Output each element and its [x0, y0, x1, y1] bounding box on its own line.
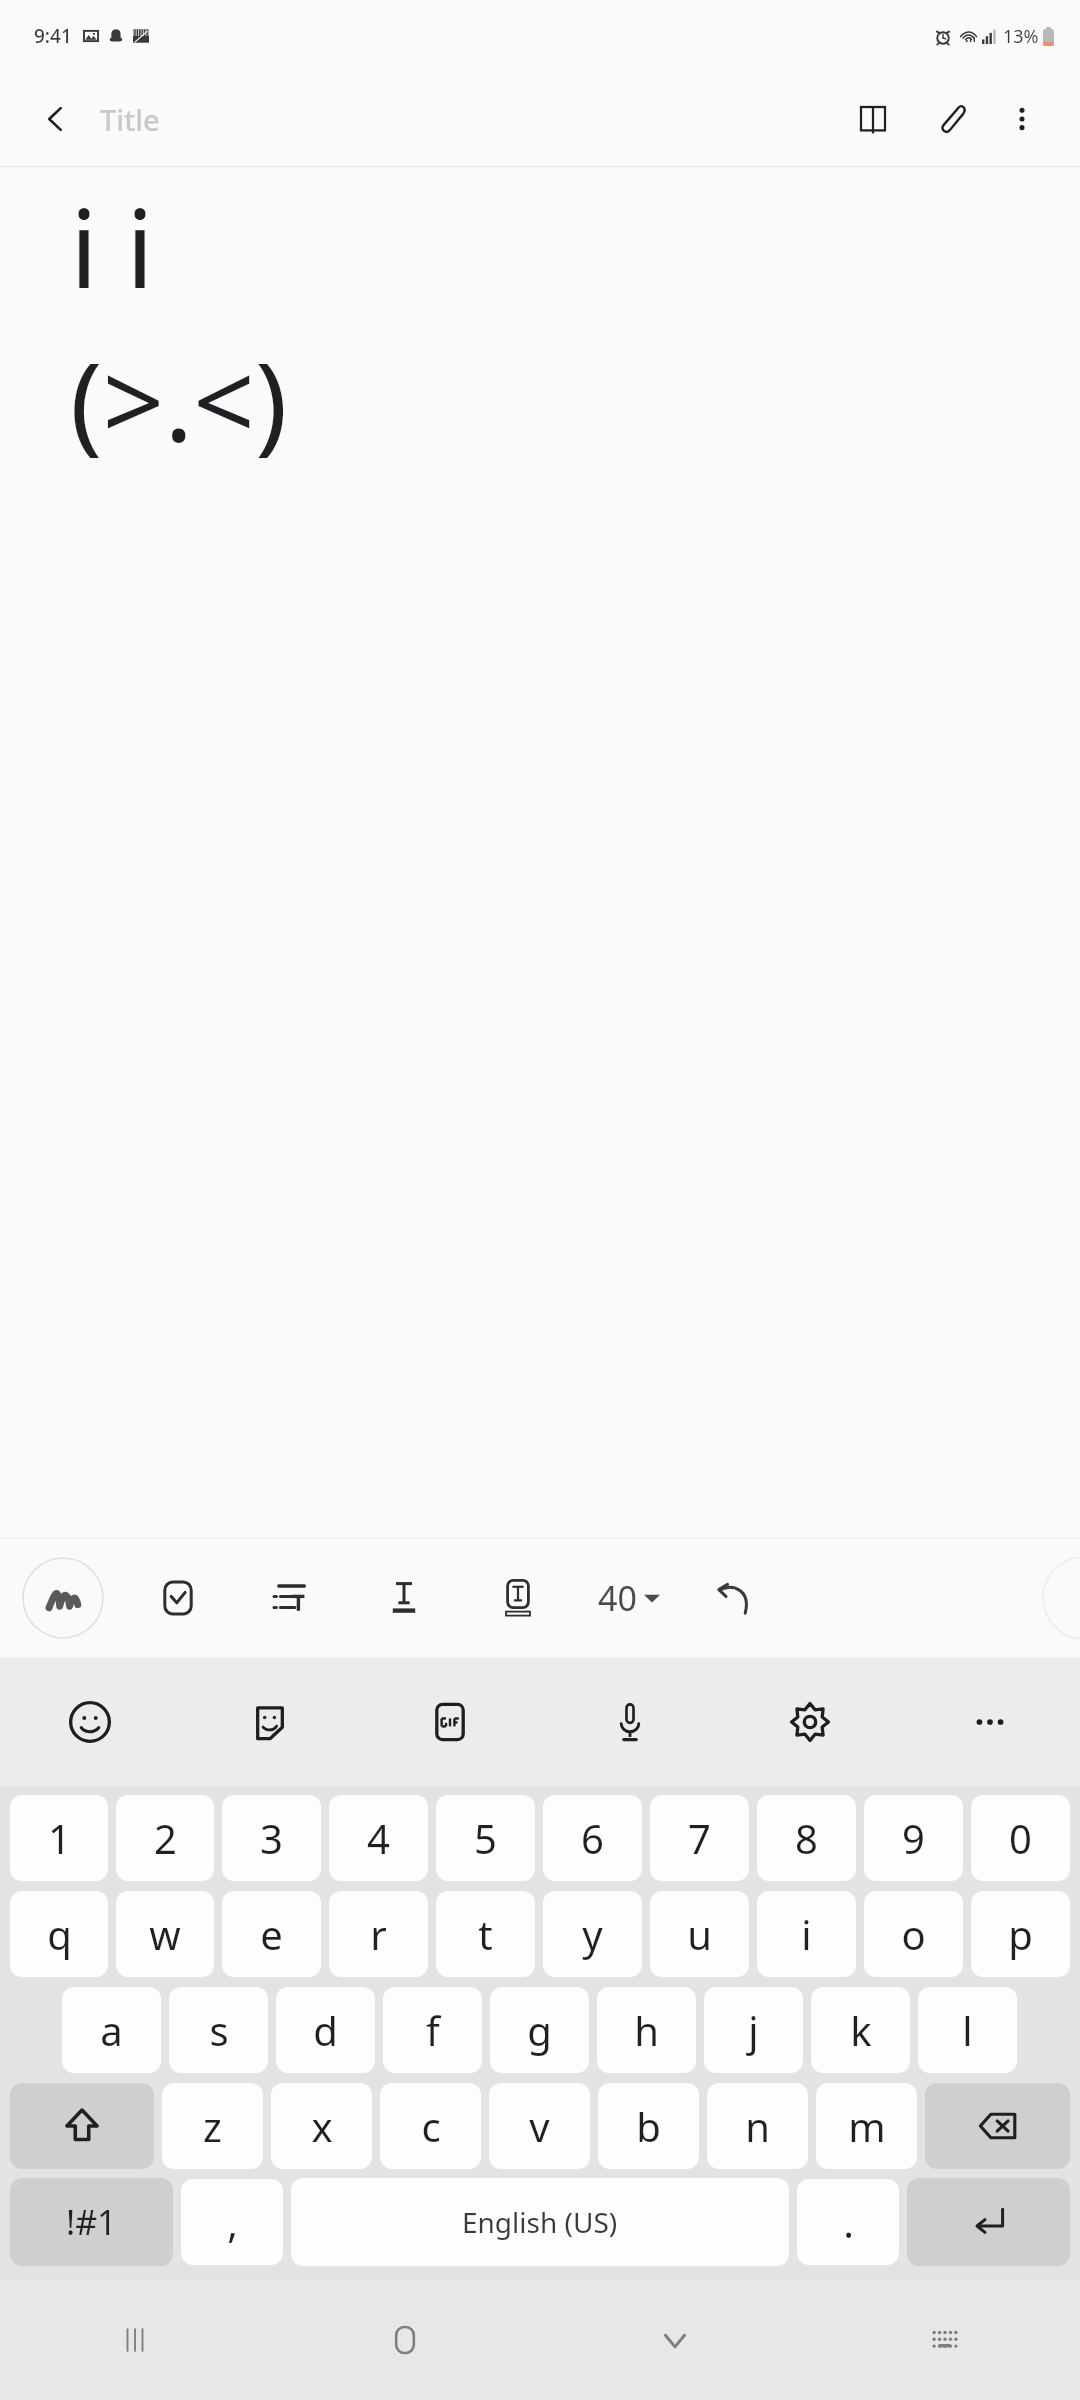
staticText: 8 [795, 1811, 818, 1865]
staticText: 40 [598, 1575, 637, 1621]
staticText: w [149, 1907, 181, 1961]
button[interactable]: y [543, 1891, 642, 1977]
button[interactable]: j [704, 1987, 803, 2073]
button[interactable]: x [271, 2083, 372, 2169]
staticText: v [529, 2099, 550, 2153]
button[interactable]: r [329, 1891, 428, 1977]
button[interactable]: , [181, 2179, 283, 2265]
button[interactable]: n [707, 2083, 808, 2169]
staticText: u [687, 1907, 712, 1961]
staticText: (>.<) [70, 326, 288, 473]
staticText: r [370, 1907, 387, 1961]
button[interactable]: a [62, 1987, 161, 2073]
button[interactable]: 3 [222, 1795, 321, 1881]
staticText: x [311, 2099, 333, 2153]
staticText: h [634, 2003, 659, 2057]
button[interactable]: w [116, 1891, 214, 1977]
button[interactable]: 9 [864, 1795, 963, 1881]
button[interactable]: m [816, 2083, 917, 2169]
button[interactable]: GIF [360, 1658, 540, 1786]
button[interactable]: h [597, 1987, 696, 2073]
button[interactable]: 0 [971, 1795, 1070, 1881]
staticText: e [260, 1907, 283, 1961]
button[interactable]: s [169, 1987, 268, 2073]
button[interactable]: . [797, 2179, 899, 2265]
staticText: d [313, 2003, 338, 2057]
button[interactable]: Enter [907, 2178, 1070, 2266]
button[interactable]: e [222, 1891, 321, 1977]
button[interactable]: Text style [372, 1566, 436, 1630]
staticText: 3 [260, 1811, 283, 1865]
button[interactable]: l [918, 1987, 1017, 2073]
staticText: 9 [902, 1811, 925, 1865]
staticText: q [47, 1907, 72, 1961]
staticText: a [100, 2003, 123, 2057]
staticText: m [848, 2099, 886, 2153]
button[interactable]: b [598, 2083, 699, 2169]
button[interactable]: Back [28, 91, 84, 147]
button[interactable]: q [10, 1891, 108, 1977]
button[interactable]: f [383, 1987, 482, 2073]
button[interactable]: Attach [920, 88, 982, 150]
button[interactable]: Shift [10, 2083, 154, 2169]
button[interactable]: 2 [116, 1795, 214, 1881]
button[interactable]: Text box [486, 1566, 550, 1630]
button[interactable]: c [380, 2083, 481, 2169]
staticText: k [850, 2003, 872, 2057]
button[interactable]: o [864, 1891, 963, 1977]
button[interactable]: Handwriting [22, 1557, 104, 1639]
staticText: j [748, 2003, 759, 2057]
button[interactable]: u [650, 1891, 749, 1977]
button[interactable]: Emoji [0, 1658, 180, 1786]
staticText: 7 [688, 1811, 711, 1865]
button[interactable]: Hide keyboard [540, 2280, 810, 2400]
button[interactable]: Checklist [146, 1566, 210, 1630]
button[interactable]: Keyboard settings [720, 1658, 900, 1786]
button[interactable]: Recents [0, 2280, 270, 2400]
button[interactable]: English (US) [291, 2178, 789, 2266]
staticText: n [745, 2099, 770, 2153]
button[interactable]: z [162, 2083, 263, 2169]
button[interactable]: Paragraph style [258, 1566, 322, 1630]
button[interactable]: 5 [436, 1795, 535, 1881]
button[interactable]: 1 [10, 1795, 108, 1881]
button[interactable]: d [276, 1987, 375, 2073]
button[interactable]: Reading view [842, 88, 904, 150]
button[interactable]: v [489, 2083, 590, 2169]
button[interactable]: More [900, 1658, 1080, 1786]
staticText: s [209, 2003, 229, 2057]
button[interactable]: Title [100, 100, 160, 139]
button[interactable]: Voice input [540, 1658, 720, 1786]
button[interactable]: 40 [592, 1575, 666, 1621]
staticText: i [801, 1907, 812, 1961]
button[interactable]: i [757, 1891, 856, 1977]
button[interactable]: !#1 [10, 2178, 173, 2266]
staticText: , [227, 2195, 238, 2249]
button[interactable]: t [436, 1891, 535, 1977]
button[interactable]: More options [994, 91, 1050, 147]
button[interactable]: 8 [757, 1795, 856, 1881]
button[interactable]: k [811, 1987, 910, 2073]
staticText: 4 [367, 1811, 390, 1865]
button[interactable]: Backspace [925, 2083, 1070, 2169]
button[interactable]: g [490, 1987, 589, 2073]
staticText: l [962, 2003, 973, 2057]
staticText: b [636, 2099, 661, 2153]
button[interactable]: Sticker [180, 1658, 360, 1786]
button[interactable]: p [971, 1891, 1070, 1977]
button[interactable]: Home [270, 2280, 540, 2400]
button[interactable]: 7 [650, 1795, 749, 1881]
staticText: 6 [581, 1811, 604, 1865]
staticText: g [527, 2003, 552, 2057]
staticText: c [421, 2099, 441, 2153]
staticText: 5 [474, 1811, 497, 1865]
button[interactable]: 6 [543, 1795, 642, 1881]
staticText: i i [70, 173, 154, 320]
staticText: . [843, 2195, 854, 2249]
staticText: 9:41 [34, 23, 72, 49]
staticText: t [478, 1907, 493, 1961]
button[interactable]: Undo [702, 1566, 766, 1630]
button[interactable]: 4 [329, 1795, 428, 1881]
staticText: English (US) [462, 2203, 618, 2241]
button[interactable]: Switch keyboard [810, 2280, 1080, 2400]
